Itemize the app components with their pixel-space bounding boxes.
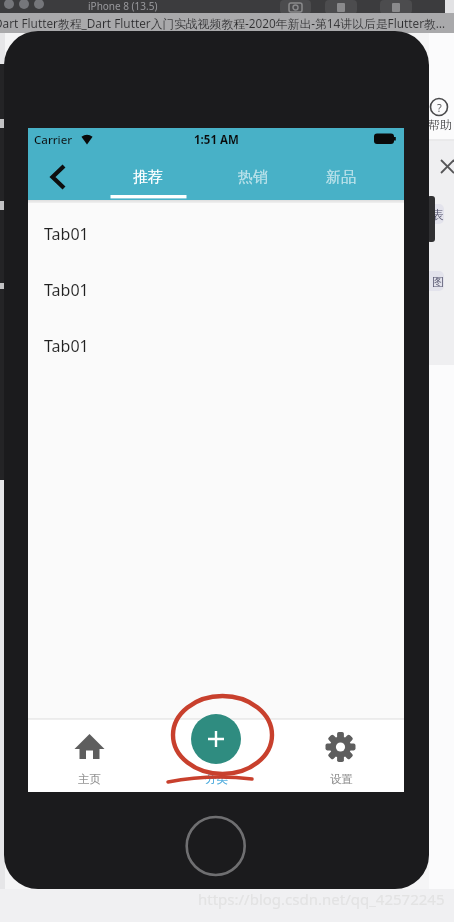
button[interactable]: Tab01: [28, 206, 404, 262]
staticText: 新品: [326, 168, 356, 187]
staticText: 主页: [78, 772, 101, 786]
staticText: 推荐: [133, 168, 163, 187]
button[interactable]: 热销: [221, 166, 285, 188]
staticText: Tab01: [44, 335, 89, 357]
button[interactable]: [52, 723, 128, 792]
staticText: 热销: [238, 168, 268, 187]
staticText: iPhone 8 (13.5): [88, 0, 158, 13]
button[interactable]: [191, 714, 241, 764]
staticText: Tab01: [44, 279, 89, 301]
button[interactable]: 新品: [309, 166, 373, 188]
button[interactable]: Tab01: [28, 318, 404, 374]
staticText: 1:51 AM: [194, 132, 239, 146]
staticText: 表: [432, 207, 444, 222]
button[interactable]: [36, 162, 76, 192]
staticText: Tab01: [44, 223, 89, 245]
staticText: 分类: [205, 772, 228, 786]
button[interactable]: Tab01: [28, 262, 404, 318]
staticText: 图: [432, 274, 444, 289]
button[interactable]: [303, 723, 379, 792]
button[interactable]: 推荐: [116, 166, 180, 188]
staticText: Carrier: [34, 132, 73, 146]
staticText: https://blog.csdn.net/qq_42572245: [198, 889, 445, 909]
staticText: 帮助: [428, 117, 452, 132]
staticText: Dart Flutter教程_Dart Flutter入门实战视频教程-2020…: [0, 15, 446, 31]
staticText: 设置: [330, 772, 353, 786]
staticText: ?: [437, 100, 442, 114]
